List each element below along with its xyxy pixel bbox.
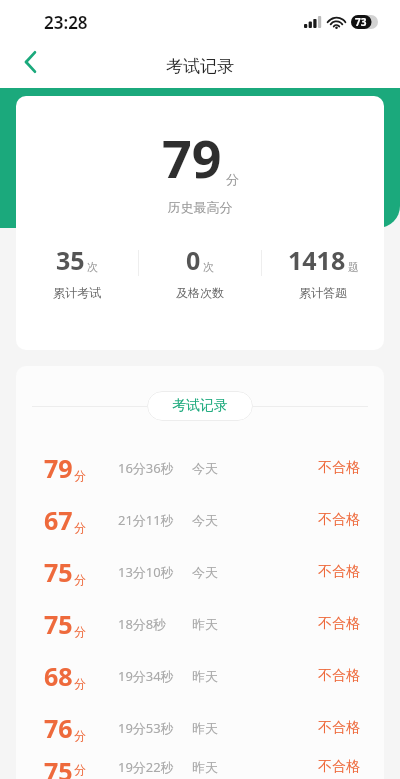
- staticText: 今天: [192, 460, 218, 476]
- staticText: 次: [203, 260, 214, 274]
- staticText: 不合格: [318, 758, 360, 776]
- staticText: 分: [74, 728, 86, 743]
- staticText: 13分10秒: [118, 563, 192, 581]
- staticText: 23:28: [44, 11, 88, 34]
- staticText: 75: [44, 555, 73, 589]
- staticText: 考试记录: [172, 397, 228, 415]
- staticText: 分: [74, 676, 86, 691]
- staticText: 累计考试: [53, 285, 101, 300]
- staticText: 不合格: [318, 511, 360, 529]
- button[interactable]: 75: [16, 598, 384, 650]
- staticText: 76: [44, 711, 73, 745]
- staticText: 21分11秒: [118, 511, 192, 529]
- staticText: 16分36秒: [118, 459, 192, 477]
- staticText: 昨天: [192, 759, 218, 775]
- staticText: 累计答题: [299, 285, 347, 300]
- staticText: 不合格: [318, 615, 360, 633]
- staticText: 历史最高分: [16, 199, 384, 215]
- staticText: 今天: [192, 564, 218, 580]
- staticText: 今天: [192, 512, 218, 528]
- staticText: 0: [186, 243, 201, 277]
- staticText: 及格次数: [176, 285, 224, 300]
- staticText: 19分53秒: [118, 719, 192, 737]
- staticText: 昨天: [192, 668, 218, 684]
- staticText: 题: [348, 260, 359, 274]
- button[interactable]: 79: [16, 442, 384, 494]
- staticText: 35: [56, 243, 85, 277]
- staticText: 分: [74, 520, 86, 535]
- staticText: 分: [74, 762, 86, 777]
- staticText: 分: [74, 572, 86, 587]
- staticText: 分: [74, 624, 86, 639]
- staticText: 18分8秒: [118, 615, 192, 633]
- staticText: 19分34秒: [118, 667, 192, 685]
- staticText: 分: [226, 171, 239, 187]
- staticText: 不合格: [318, 667, 360, 685]
- button[interactable]: 68: [16, 650, 384, 702]
- staticText: 75: [44, 754, 73, 779]
- button[interactable]: Back: [8, 40, 52, 84]
- staticText: 昨天: [192, 720, 218, 736]
- staticText: 考试记录: [166, 56, 234, 77]
- staticText: 次: [87, 260, 98, 274]
- staticText: 79: [162, 122, 222, 193]
- staticText: 分: [74, 468, 86, 483]
- staticText: 68: [44, 659, 73, 693]
- button[interactable]: 75: [16, 754, 384, 779]
- staticText: 75: [44, 607, 73, 641]
- staticText: 73: [355, 15, 367, 29]
- button[interactable]: 67: [16, 494, 384, 546]
- staticText: 79: [44, 451, 73, 485]
- button[interactable]: 75: [16, 546, 384, 598]
- staticText: 1418: [288, 243, 346, 277]
- button[interactable]: 考试记录: [147, 391, 253, 421]
- staticText: 19分22秒: [118, 758, 192, 776]
- button[interactable]: 76: [16, 702, 384, 754]
- staticText: 不合格: [318, 563, 360, 581]
- staticText: 昨天: [192, 616, 218, 632]
- staticText: 不合格: [318, 459, 360, 477]
- staticText: 不合格: [318, 719, 360, 737]
- staticText: 67: [44, 503, 73, 537]
